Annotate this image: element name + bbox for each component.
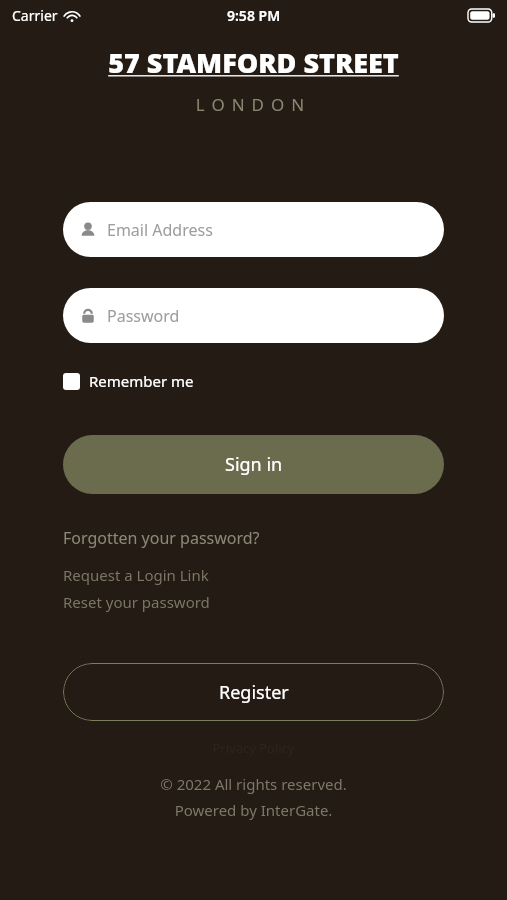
- staticText: 57 STAMFORD STREET: [0, 44, 507, 81]
- staticText: LONDON: [0, 93, 507, 116]
- button[interactable]: Sign in: [63, 435, 444, 494]
- button[interactable]: Password: [63, 288, 444, 343]
- staticText: Powered by InterGate.: [0, 800, 507, 820]
- staticText: Remember me: [89, 371, 194, 391]
- staticText: 9:58 PM: [227, 6, 281, 25]
- other: Email Address: [80, 222, 96, 238]
- staticText: Sign in: [225, 452, 283, 477]
- button[interactable]: Register: [63, 663, 444, 721]
- staticText: © 2022 All rights reserved.: [0, 774, 507, 794]
- button[interactable]: Reset your password: [63, 592, 210, 612]
- button[interactable]: Remember me: [63, 371, 194, 391]
- button[interactable]: Forgotten your password?: [63, 527, 260, 549]
- button[interactable]: Email Address: [63, 202, 444, 257]
- staticText: Password: [107, 305, 180, 327]
- staticText: Email Address: [107, 219, 213, 241]
- other: Password: [80, 308, 96, 324]
- button[interactable]: Request a Login Link: [63, 565, 209, 585]
- staticText: Carrier: [12, 6, 58, 25]
- staticText: Register: [219, 680, 289, 705]
